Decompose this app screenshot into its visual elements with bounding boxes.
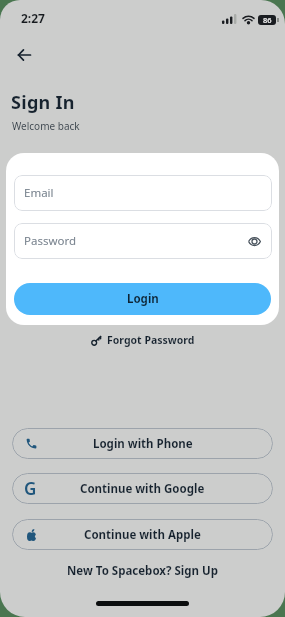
staticText: Login xyxy=(127,291,159,307)
staticText: Email xyxy=(24,185,54,201)
button[interactable]: Login with Phone xyxy=(12,428,273,459)
staticText: 2:27 xyxy=(21,10,45,26)
staticText: G xyxy=(24,477,37,500)
button[interactable]: Forgot Password xyxy=(0,333,285,347)
button[interactable]: Password xyxy=(14,223,272,259)
staticText: Continue with Apple xyxy=(84,527,201,543)
staticText: Continue with Google xyxy=(80,481,205,497)
button[interactable]: New To Spacebox? Sign Up xyxy=(67,563,218,579)
button[interactable]: G xyxy=(12,473,273,504)
staticText: 86 xyxy=(263,15,272,25)
staticText: Forgot Password xyxy=(107,333,195,347)
button[interactable]: Email xyxy=(14,175,272,211)
button[interactable]: Continue with Apple xyxy=(12,519,273,550)
staticText: Welcome back xyxy=(12,119,80,133)
staticText: Login with Phone xyxy=(93,436,193,452)
staticText: Password xyxy=(24,233,77,249)
button[interactable]: Login xyxy=(14,283,271,315)
staticText: Sign In xyxy=(11,90,75,115)
button[interactable] xyxy=(13,45,35,65)
